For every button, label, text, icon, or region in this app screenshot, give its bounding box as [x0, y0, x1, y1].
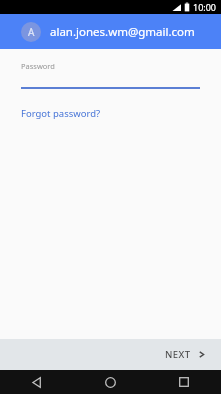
staticText: NEXT [165, 348, 191, 361]
staticText: Forgot password? [21, 107, 101, 120]
staticText: alan.jones.wm@gmail.com [50, 24, 195, 40]
button[interactable]: Back [0, 370, 73, 394]
button[interactable]: Recent apps [147, 370, 221, 394]
button[interactable]: Home [73, 370, 147, 394]
button[interactable]: NEXT [149, 339, 221, 370]
button[interactable]: A [0, 14, 221, 49]
staticText: A [28, 25, 35, 39]
staticText: 10:00 [193, 1, 217, 13]
button[interactable]: Forgot password? [21, 107, 101, 120]
staticText: Password [21, 61, 55, 71]
